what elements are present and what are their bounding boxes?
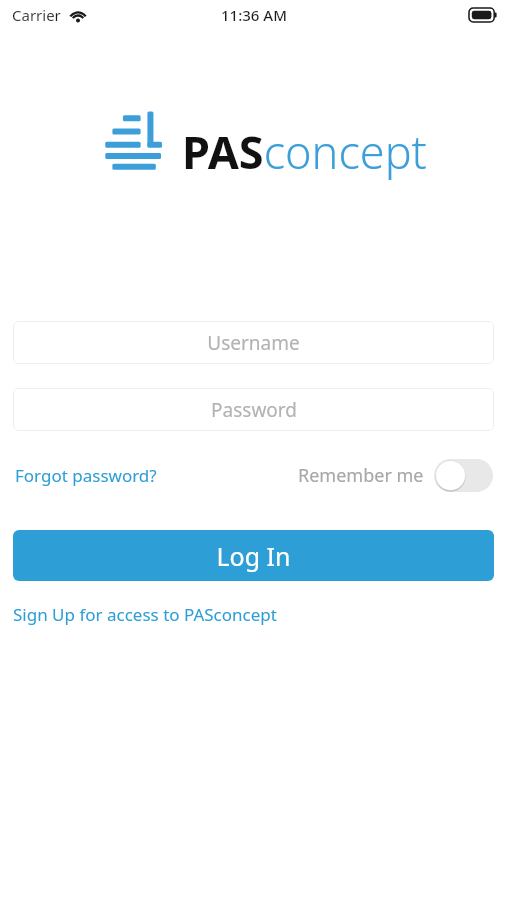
staticText: Sign Up for access to PASconcept	[13, 603, 277, 626]
staticText: Carrier	[12, 5, 61, 25]
button[interactable]: Sign Up for access to PASconcept	[13, 598, 277, 631]
staticText: Username	[207, 330, 300, 356]
staticText: Log In	[216, 539, 291, 573]
staticText: Remember me	[298, 463, 424, 488]
button[interactable]: Password	[13, 388, 494, 431]
staticText: 11:36 AM	[221, 5, 287, 25]
other: Remember me toggle	[434, 459, 493, 492]
button[interactable]: Remember me	[292, 455, 494, 496]
staticText: PASconcept	[182, 121, 427, 182]
staticText: Forgot password?	[15, 464, 157, 487]
button[interactable]: Log In	[13, 530, 494, 581]
staticText: Password	[211, 397, 297, 423]
button[interactable]: Forgot password?	[13, 458, 159, 493]
button[interactable]: Username	[13, 321, 494, 364]
